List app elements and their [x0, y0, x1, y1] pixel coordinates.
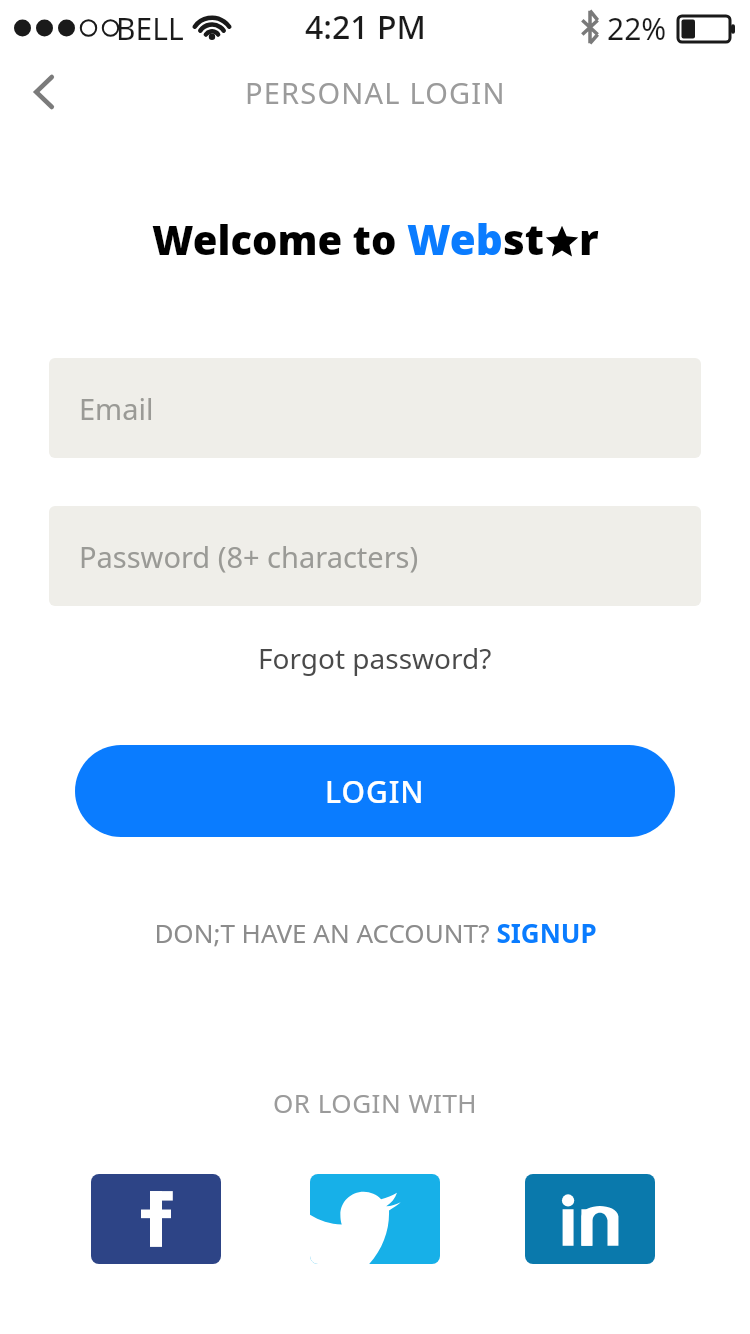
button[interactable]: Password (8+ characters)	[49, 506, 701, 606]
staticText: OR LOGIN WITH	[273, 1085, 478, 1120]
staticText: 4:21 PM	[305, 5, 426, 49]
button[interactable]: Sign in with LinkedIn	[525, 1174, 655, 1264]
staticText: DON;T HAVE AN ACCOUNT? SIGNUP	[154, 915, 597, 950]
staticText: Web	[407, 210, 503, 267]
staticText: PERSONAL LOGIN	[245, 73, 506, 112]
staticText: Forgot password?	[258, 639, 492, 677]
button[interactable]: Back	[8, 56, 80, 128]
staticText: Password (8+ characters)	[79, 537, 419, 576]
staticText: BELL	[116, 8, 184, 49]
staticText: r	[579, 210, 599, 267]
button[interactable]: Email	[49, 358, 701, 458]
button[interactable]: Forgot password?	[0, 633, 750, 683]
button[interactable]: DON;T HAVE AN ACCOUNT? SIGNUP	[0, 908, 750, 956]
button[interactable]: LOGIN	[75, 745, 675, 837]
staticText: Email	[79, 389, 154, 428]
staticText: st	[503, 210, 545, 267]
staticText: LOGIN	[325, 771, 425, 812]
staticText: Welcome to	[152, 212, 407, 266]
staticText: 22%	[607, 8, 667, 49]
button[interactable]: Sign in with Twitter	[310, 1174, 440, 1264]
button[interactable]: Sign in with Facebook	[91, 1174, 221, 1264]
